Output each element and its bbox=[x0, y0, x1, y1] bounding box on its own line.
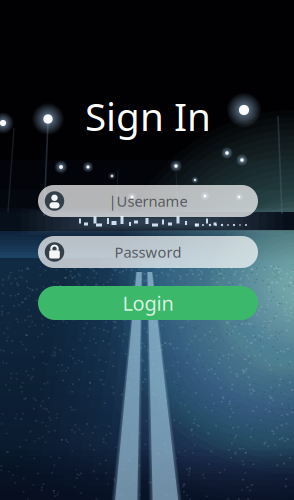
staticText: Login bbox=[122, 290, 173, 316]
staticText: Sign In bbox=[85, 90, 211, 142]
staticText: |Username bbox=[108, 191, 187, 211]
button[interactable]: Login bbox=[38, 286, 258, 320]
button[interactable]: |Username bbox=[38, 185, 258, 217]
staticText: Password bbox=[114, 242, 181, 262]
button[interactable]: Password bbox=[38, 236, 258, 268]
